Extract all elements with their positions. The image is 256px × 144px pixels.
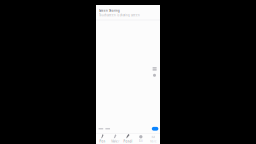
button[interactable]: Colour bbox=[152, 73, 157, 78]
staticText: Pencil bbox=[123, 140, 132, 143]
button[interactable]: Pen bbox=[96, 132, 109, 144]
button[interactable]: Send bbox=[152, 127, 158, 131]
button[interactable]: More bbox=[147, 132, 160, 144]
button[interactable]: Marker bbox=[109, 132, 122, 144]
staticText: Marker bbox=[111, 140, 119, 143]
button[interactable]: Pencil bbox=[122, 132, 134, 144]
staticText: Screen Sharing bbox=[99, 9, 120, 12]
staticText: More bbox=[150, 140, 157, 143]
staticText: Touchscreen is sharing screen bbox=[99, 13, 140, 17]
button[interactable]: Fill bbox=[134, 132, 147, 144]
staticText: Fill bbox=[139, 140, 143, 143]
staticText: Pen bbox=[99, 140, 105, 143]
button[interactable]: Layers bbox=[152, 67, 157, 72]
